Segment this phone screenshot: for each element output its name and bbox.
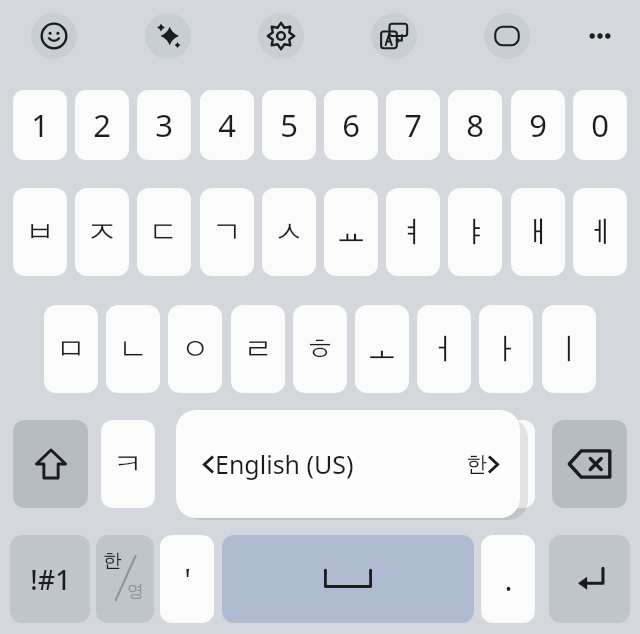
button[interactable]: Translate [371, 13, 417, 59]
staticText: 한 [103, 549, 122, 573]
staticText: ㅂ [25, 213, 55, 251]
button[interactable]: ㅔ [573, 188, 627, 276]
button[interactable]: ' [160, 535, 214, 623]
button[interactable]: ㄱ [200, 188, 254, 276]
staticText: ㅣ [554, 330, 584, 368]
button[interactable]: ㅓ [417, 305, 471, 393]
staticText: 9 [529, 104, 547, 146]
staticText: 3 [155, 104, 173, 146]
button[interactable]: ㅏ [479, 305, 533, 393]
staticText: ㅐ [523, 213, 553, 251]
button[interactable]: ㅕ [386, 188, 440, 276]
staticText: 5 [280, 104, 298, 146]
button[interactable]: 5 [262, 90, 316, 160]
button[interactable]: 6 [324, 90, 378, 160]
button[interactable]: Emoji [31, 13, 77, 59]
button[interactable]: 1 [13, 90, 67, 160]
staticText: ㅋ [113, 445, 143, 483]
staticText: ㄱ [212, 213, 242, 251]
staticText: 4 [218, 104, 236, 146]
button[interactable]: ㄴ [106, 305, 160, 393]
staticText: 0 [591, 104, 609, 146]
button[interactable]: ㅑ [448, 188, 502, 276]
button[interactable]: ㅣ [542, 305, 596, 393]
staticText: 7 [404, 104, 422, 146]
staticText: ㅅ [274, 213, 304, 251]
button[interactable]: Korean English toggle [96, 535, 154, 623]
button[interactable]: 2 [75, 90, 129, 160]
staticText: ㅇ [180, 330, 210, 368]
staticText: ㅑ [460, 213, 490, 251]
staticText: ㅔ [585, 213, 615, 251]
button[interactable]: ㅐ [511, 188, 565, 276]
button[interactable]: ㅋ [101, 420, 155, 508]
staticText: English (US) [215, 447, 354, 481]
staticText: 1 [31, 104, 49, 146]
staticText: ㄷ [149, 213, 179, 251]
staticText: . [504, 559, 513, 600]
button[interactable]: ㅎ [293, 305, 347, 393]
button[interactable]: More options [577, 13, 623, 59]
staticText: 2 [93, 104, 111, 146]
button[interactable]: ㅈ [75, 188, 129, 276]
button[interactable]: Backspace [552, 420, 627, 508]
staticText: ㄹ [243, 330, 273, 368]
button[interactable]: 4 [200, 90, 254, 160]
staticText: ㅁ [56, 330, 86, 368]
staticText: ㅈ [87, 213, 117, 251]
staticText: 한 [466, 451, 487, 477]
button[interactable]: 9 [511, 90, 565, 160]
button[interactable]: ㅁ [44, 305, 98, 393]
staticText: 영 [127, 581, 144, 602]
staticText: !#1 [30, 561, 71, 598]
button[interactable]: ㄹ [231, 305, 285, 393]
staticText: ' [184, 559, 191, 600]
button[interactable]: ㅛ [324, 188, 378, 276]
button[interactable]: ㅇ [168, 305, 222, 393]
button[interactable]: Language selector English US [176, 410, 520, 518]
staticText: ㄴ [118, 330, 148, 368]
button[interactable]: ㅂ [13, 188, 67, 276]
button[interactable]: 8 [448, 90, 502, 160]
staticText: 8 [466, 104, 484, 146]
staticText: 6 [342, 104, 360, 146]
staticText: ㅎ [305, 330, 335, 368]
button[interactable]: Enter [549, 535, 630, 623]
button[interactable]: 7 [386, 90, 440, 160]
button[interactable]: . [481, 535, 535, 623]
button[interactable]: 3 [137, 90, 191, 160]
button[interactable]: !#1 [10, 535, 90, 623]
button[interactable]: ㅗ [355, 305, 409, 393]
staticText: ㅓ [429, 330, 459, 368]
staticText: ㅏ [491, 330, 521, 368]
button[interactable]: ㅅ [262, 188, 316, 276]
button[interactable]: ㄷ [137, 188, 191, 276]
staticText: ㅗ [367, 330, 397, 368]
button[interactable]: Space [222, 535, 474, 623]
button[interactable]: Settings [258, 13, 304, 59]
button[interactable]: Suggestions [145, 13, 191, 59]
staticText: ㅕ [398, 213, 428, 251]
button[interactable]: Shift [13, 420, 88, 508]
button[interactable]: 0 [573, 90, 627, 160]
button[interactable]: . [481, 420, 535, 508]
button[interactable]: Samsung Pass [484, 13, 530, 59]
staticText: ㅛ [336, 213, 366, 251]
